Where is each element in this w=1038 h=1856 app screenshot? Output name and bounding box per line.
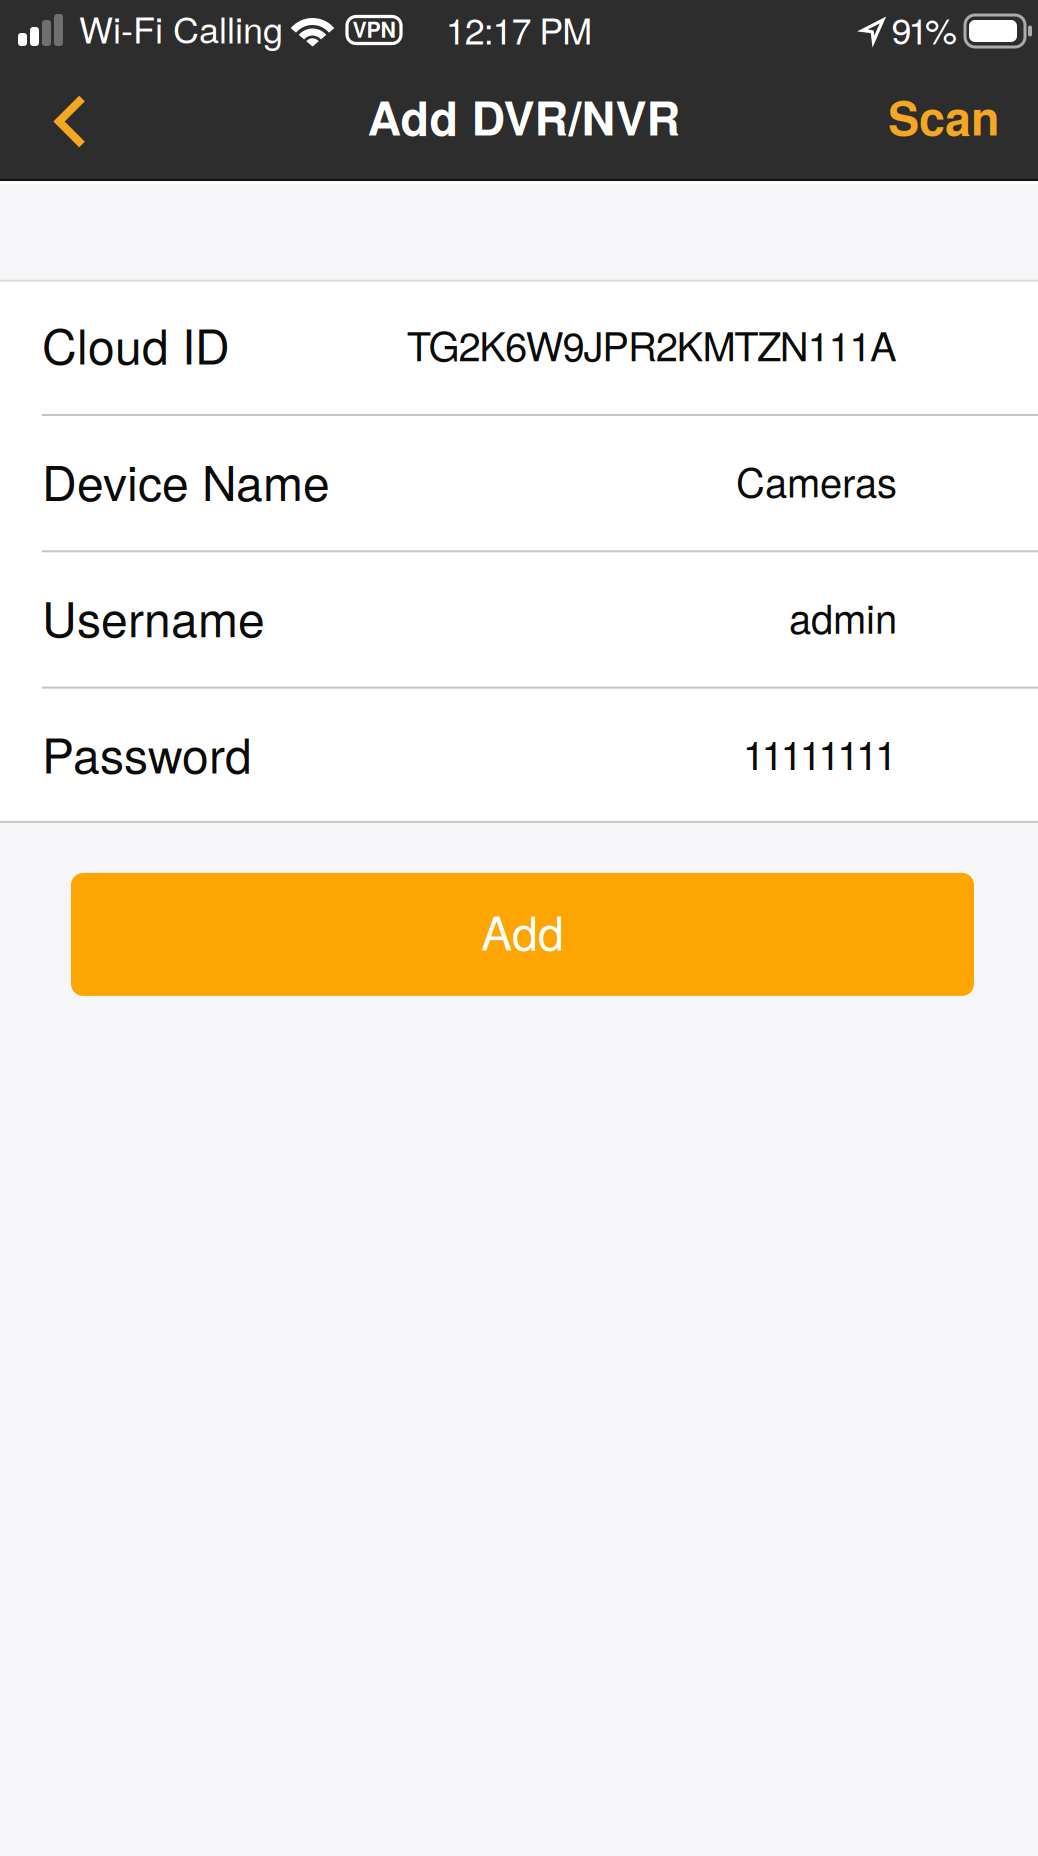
- staticText: 12:17 PM: [446, 3, 592, 55]
- staticText: VPN: [352, 14, 395, 44]
- staticText: admin: [789, 588, 897, 645]
- staticText: TG2K6W9JPR2KMTZN111A: [407, 315, 897, 372]
- staticText: 91%: [891, 3, 957, 55]
- staticText: Wi-Fi Calling: [79, 2, 283, 54]
- staticText: Scan: [888, 83, 1000, 150]
- staticText: Password: [42, 718, 252, 787]
- staticText: Device Name: [42, 446, 330, 514]
- staticText: Cloud ID: [42, 309, 230, 378]
- staticText: Cameras: [736, 451, 897, 509]
- staticText: Username: [42, 582, 265, 651]
- button[interactable]: Add: [71, 873, 974, 996]
- button[interactable]: Scan: [888, 63, 1038, 180]
- button[interactable]: Back: [0, 63, 124, 180]
- staticText: 11111111: [743, 724, 897, 781]
- staticText: Add: [481, 897, 564, 964]
- staticText: Add DVR/NVR: [367, 83, 680, 150]
